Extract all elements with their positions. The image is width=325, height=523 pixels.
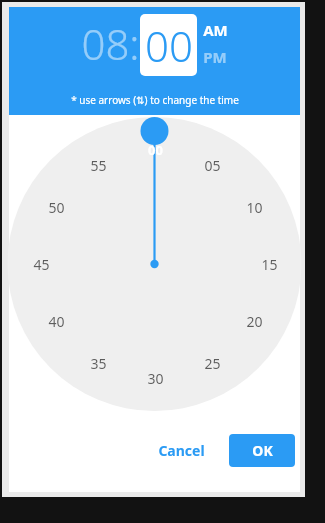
staticText: 40 xyxy=(48,312,65,331)
button[interactable]: 00 xyxy=(137,139,173,161)
staticText: 20 xyxy=(246,312,263,331)
button[interactable]: 10 xyxy=(236,196,272,218)
staticText: 30 xyxy=(147,369,164,388)
button[interactable]: 05 xyxy=(194,154,230,176)
staticText: Cancel xyxy=(158,441,205,460)
button[interactable]: Cancel xyxy=(146,432,217,469)
button[interactable]: OK xyxy=(229,434,295,467)
staticText: 05 xyxy=(204,156,221,175)
button[interactable]: 25 xyxy=(194,352,230,374)
button[interactable]: 35 xyxy=(80,352,116,374)
button[interactable]: PM xyxy=(203,47,227,67)
staticText: 00 xyxy=(148,141,163,159)
button[interactable]: 15 xyxy=(251,253,287,275)
staticText: 55 xyxy=(90,156,107,175)
staticText: OK xyxy=(252,441,273,460)
button[interactable]: 45 xyxy=(23,253,59,275)
button[interactable]: AM xyxy=(203,20,228,40)
staticText: 25 xyxy=(204,354,221,373)
button[interactable]: 55 xyxy=(80,154,116,176)
staticText: 10 xyxy=(246,198,263,217)
button[interactable]: 00 xyxy=(140,14,197,76)
button[interactable]: 40 xyxy=(38,310,74,332)
button[interactable]: 20 xyxy=(236,310,272,332)
staticText: 45 xyxy=(33,255,50,274)
staticText: 50 xyxy=(48,198,65,217)
button[interactable]: 30 xyxy=(137,367,173,389)
button[interactable]: 50 xyxy=(38,196,74,218)
staticText: 00 xyxy=(145,17,193,74)
staticText: * use arrows (⇅) to change the time xyxy=(71,93,239,107)
staticText: 15 xyxy=(261,255,278,274)
button[interactable]: 08: xyxy=(81,15,140,76)
staticText: 35 xyxy=(90,354,107,373)
